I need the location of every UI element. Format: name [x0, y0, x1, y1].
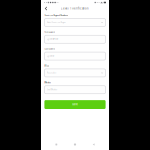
- button[interactable]: Please select: [44, 69, 106, 77]
- button[interactable]: Select Country or Region: [44, 18, 106, 26]
- button[interactable]: e.g. LOREM IPSUM: [44, 35, 106, 43]
- staticText: e.g. LOREM IPSUM: [47, 38, 58, 40]
- staticText: Select Country or Region: [47, 22, 66, 23]
- staticText: Submit: [72, 103, 78, 106]
- button[interactable]: e.g. LOREM: [44, 52, 106, 60]
- button[interactable]: Recents: [53, 141, 59, 148]
- staticText: Level 1 Verification: [61, 7, 89, 10]
- button[interactable]: Submit: [44, 100, 106, 109]
- staticText: e.g. LOREM: [47, 55, 54, 57]
- staticText: ID Number: [44, 82, 51, 84]
- button[interactable]: Back: [90, 141, 97, 148]
- staticText: Enter ID Number: [47, 89, 58, 91]
- staticText: First name(s): [44, 31, 55, 33]
- staticText: Country or Region of Residence: [44, 14, 68, 16]
- button[interactable]: Enter ID Number: [44, 86, 106, 94]
- button[interactable]: Back: [41, 5, 49, 12]
- staticText: Please select: [47, 72, 57, 74]
- staticText: Last name(s): [44, 48, 55, 50]
- staticText: ID Type: [44, 65, 49, 67]
- button[interactable]: Home: [72, 141, 78, 148]
